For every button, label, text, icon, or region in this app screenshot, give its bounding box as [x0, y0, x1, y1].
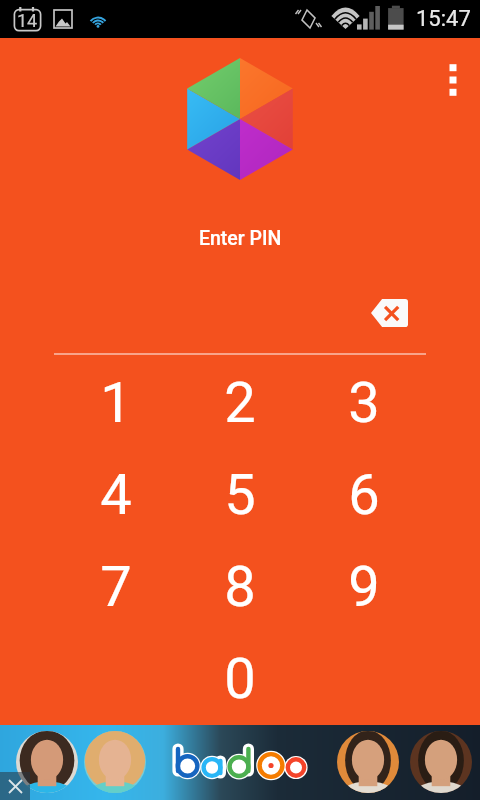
button[interactable]: 1 [54, 357, 178, 449]
staticText: 0 [224, 646, 256, 712]
staticText: 3 [348, 370, 380, 436]
staticText: 5 [224, 462, 256, 528]
staticText: 15:47 [416, 6, 471, 32]
button[interactable]: Backspace [363, 289, 415, 337]
button[interactable]: 0 [178, 633, 302, 725]
staticText: 2 [224, 370, 256, 436]
button[interactable]: 2 [178, 357, 302, 449]
button[interactable]: 7 [54, 541, 178, 633]
button[interactable]: 4 [54, 449, 178, 541]
staticText: 7 [100, 554, 132, 620]
staticText: 9 [348, 554, 380, 620]
button[interactable]: 3 [302, 357, 426, 449]
staticText: 14 [17, 10, 38, 31]
button[interactable]: Close ad [0, 772, 30, 800]
button[interactable]: 6 [302, 449, 426, 541]
staticText: 1 [100, 370, 132, 436]
button[interactable]: 8 [178, 541, 302, 633]
button[interactable]: 9 [302, 541, 426, 633]
button[interactable]: Close ad [0, 725, 480, 800]
staticText: 6 [348, 462, 380, 528]
staticText: 4 [100, 462, 132, 528]
button[interactable]: More options [427, 54, 479, 106]
button[interactable]: 5 [178, 449, 302, 541]
staticText: Enter PIN [199, 227, 282, 250]
staticText: 8 [224, 554, 256, 620]
